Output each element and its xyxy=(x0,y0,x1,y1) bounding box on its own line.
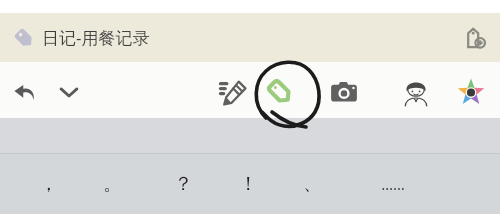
button[interactable]: Collapse keyboard xyxy=(52,75,86,109)
button[interactable]: Handwriting xyxy=(215,74,251,110)
button[interactable]: Camera xyxy=(326,74,362,110)
button[interactable]: 。 xyxy=(80,156,144,212)
button[interactable]: Tag xyxy=(262,74,298,110)
button[interactable]: Sticker store xyxy=(452,73,490,111)
staticText: 、 xyxy=(303,172,322,196)
button[interactable]: ， xyxy=(16,156,80,212)
other: Tag xyxy=(13,27,36,50)
button[interactable]: Tag xyxy=(0,13,500,62)
staticText: 。 xyxy=(103,172,122,196)
button[interactable]: Add tag xyxy=(458,21,492,55)
staticText: 日记-用餐记录 xyxy=(42,26,150,49)
button[interactable]: Stickers xyxy=(397,73,435,111)
button[interactable]: ？ xyxy=(151,156,215,212)
button[interactable]: …… xyxy=(361,156,425,212)
staticText: ？ xyxy=(174,172,193,196)
button[interactable]: 、 xyxy=(280,156,344,212)
button[interactable]: Undo xyxy=(8,75,42,109)
staticText: ， xyxy=(39,172,58,196)
button[interactable]: ！ xyxy=(216,156,280,212)
staticText: ！ xyxy=(239,172,258,196)
staticText: …… xyxy=(381,174,405,194)
